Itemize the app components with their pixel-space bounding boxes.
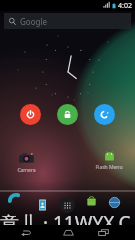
button[interactable]: Google search xyxy=(4,13,131,29)
button[interactable]: Home xyxy=(55,225,81,240)
button[interactable]: Flash Menu xyxy=(93,150,125,171)
staticText: Camera xyxy=(17,167,36,174)
button[interactable]: Recent apps xyxy=(91,225,117,240)
staticText: Google xyxy=(20,16,47,27)
staticText: 意儿 · 11WYX.C xyxy=(0,210,135,236)
button[interactable]: Phone xyxy=(5,194,24,210)
button[interactable]: Back xyxy=(13,225,39,240)
button[interactable]: Play Store xyxy=(83,194,101,210)
button[interactable]: All apps xyxy=(58,195,78,215)
staticText: Flash Menu xyxy=(95,164,123,171)
staticText: 4:02 xyxy=(118,1,132,11)
button[interactable]: Contacts xyxy=(34,195,52,213)
button[interactable]: Power xyxy=(20,104,41,125)
button[interactable]: Reboot xyxy=(94,104,115,125)
button[interactable]: Clock xyxy=(41,45,95,99)
button[interactable]: Lock screen xyxy=(57,104,78,125)
button[interactable]: Camera xyxy=(10,151,42,174)
button[interactable]: Browser xyxy=(106,194,124,210)
